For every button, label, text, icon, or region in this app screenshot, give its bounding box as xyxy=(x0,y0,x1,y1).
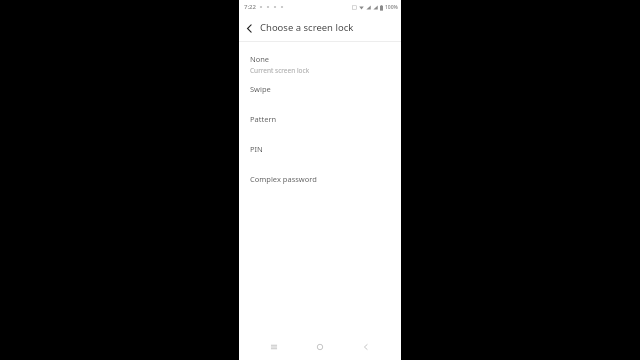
button[interactable]: Complex password xyxy=(239,171,401,201)
staticText: Current screen lock xyxy=(250,66,310,75)
button[interactable]: Swipe xyxy=(239,81,401,111)
button[interactable]: Pattern xyxy=(239,111,401,141)
button[interactable]: Back xyxy=(239,18,259,38)
staticText: Choose a screen lock xyxy=(260,21,354,34)
staticText: Swipe xyxy=(250,84,271,94)
button[interactable]: None xyxy=(239,51,401,81)
staticText: Complex password xyxy=(250,174,317,184)
staticText: 7:22 xyxy=(244,3,256,11)
staticText: PIN xyxy=(250,144,263,154)
staticText: Pattern xyxy=(250,114,277,124)
button[interactable]: PIN xyxy=(239,141,401,171)
button[interactable]: Recent apps xyxy=(263,336,285,358)
staticText: None xyxy=(250,54,270,64)
button[interactable]: Home xyxy=(309,336,331,358)
button[interactable]: Back xyxy=(355,336,377,358)
staticText: 100% xyxy=(385,4,398,11)
